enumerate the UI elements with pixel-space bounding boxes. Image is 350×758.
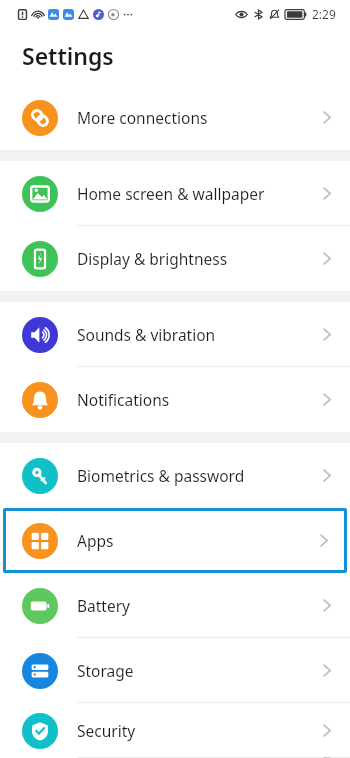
button[interactable]: Sounds & vibration bbox=[0, 302, 350, 367]
button[interactable]: Apps bbox=[3, 508, 347, 573]
staticText: Sounds & vibration bbox=[77, 324, 322, 345]
staticText: Display & brightness bbox=[77, 248, 322, 269]
staticText: Apps bbox=[77, 530, 319, 551]
button[interactable]: Home screen & wallpaper bbox=[0, 161, 350, 226]
button[interactable]: Storage bbox=[0, 638, 350, 703]
button[interactable]: More connections bbox=[0, 85, 350, 150]
staticText: Security bbox=[77, 720, 322, 741]
staticText: Storage bbox=[77, 660, 322, 681]
button[interactable]: Battery bbox=[0, 573, 350, 638]
staticText: 2:29 bbox=[312, 6, 336, 22]
staticText: More connections bbox=[77, 107, 322, 128]
staticText: Home screen & wallpaper bbox=[77, 183, 322, 204]
button[interactable]: Notifications bbox=[0, 367, 350, 432]
staticText: Notifications bbox=[77, 389, 322, 410]
staticText: Battery bbox=[77, 595, 322, 616]
button[interactable]: Biometrics & password bbox=[0, 443, 350, 508]
button[interactable]: Display & brightness bbox=[0, 226, 350, 291]
button[interactable]: Security bbox=[0, 703, 350, 758]
staticText: Biometrics & password bbox=[77, 465, 322, 486]
staticText: Settings bbox=[22, 40, 114, 71]
